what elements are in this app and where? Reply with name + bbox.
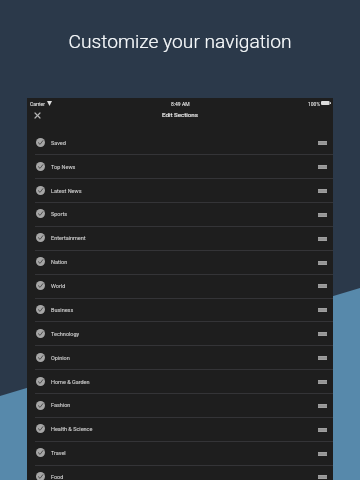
button[interactable]: [27, 321, 333, 345]
button[interactable]: [27, 178, 333, 202]
button[interactable]: [27, 226, 333, 250]
staticText: World: [51, 283, 66, 289]
staticText: Home & Garden: [51, 379, 90, 385]
button[interactable]: [27, 298, 333, 322]
button[interactable]: [27, 274, 333, 298]
staticText: Saved: [51, 140, 66, 146]
staticText: Technology: [51, 331, 80, 337]
staticText: Fashion: [51, 402, 71, 408]
button[interactable]: [27, 250, 333, 274]
button[interactable]: [27, 417, 333, 441]
staticText: Food: [51, 474, 64, 480]
staticText: Travel: [51, 450, 66, 456]
button[interactable]: [27, 130, 333, 154]
staticText: Nation: [51, 259, 68, 265]
button[interactable]: [27, 441, 333, 465]
staticText: Opinion: [51, 355, 70, 361]
button[interactable]: Close: [29, 107, 45, 123]
staticText: Sports: [51, 211, 68, 217]
button[interactable]: [27, 465, 333, 480]
staticText: Health & Science: [51, 426, 93, 432]
button[interactable]: [27, 369, 333, 393]
staticText: Top News: [51, 164, 76, 170]
staticText: Edit Sections: [162, 111, 198, 118]
staticText: Carrier: [30, 101, 45, 107]
button[interactable]: [27, 345, 333, 369]
button[interactable]: [27, 202, 333, 226]
staticText: Business: [51, 307, 74, 313]
staticText: Customize your navigation: [0, 30, 360, 53]
button[interactable]: [27, 393, 333, 417]
staticText: 8:49 AM: [171, 101, 190, 107]
staticText: 100%: [308, 101, 321, 107]
staticText: Latest News: [51, 188, 82, 194]
staticText: Entertainment: [51, 235, 86, 241]
button[interactable]: [27, 154, 333, 178]
